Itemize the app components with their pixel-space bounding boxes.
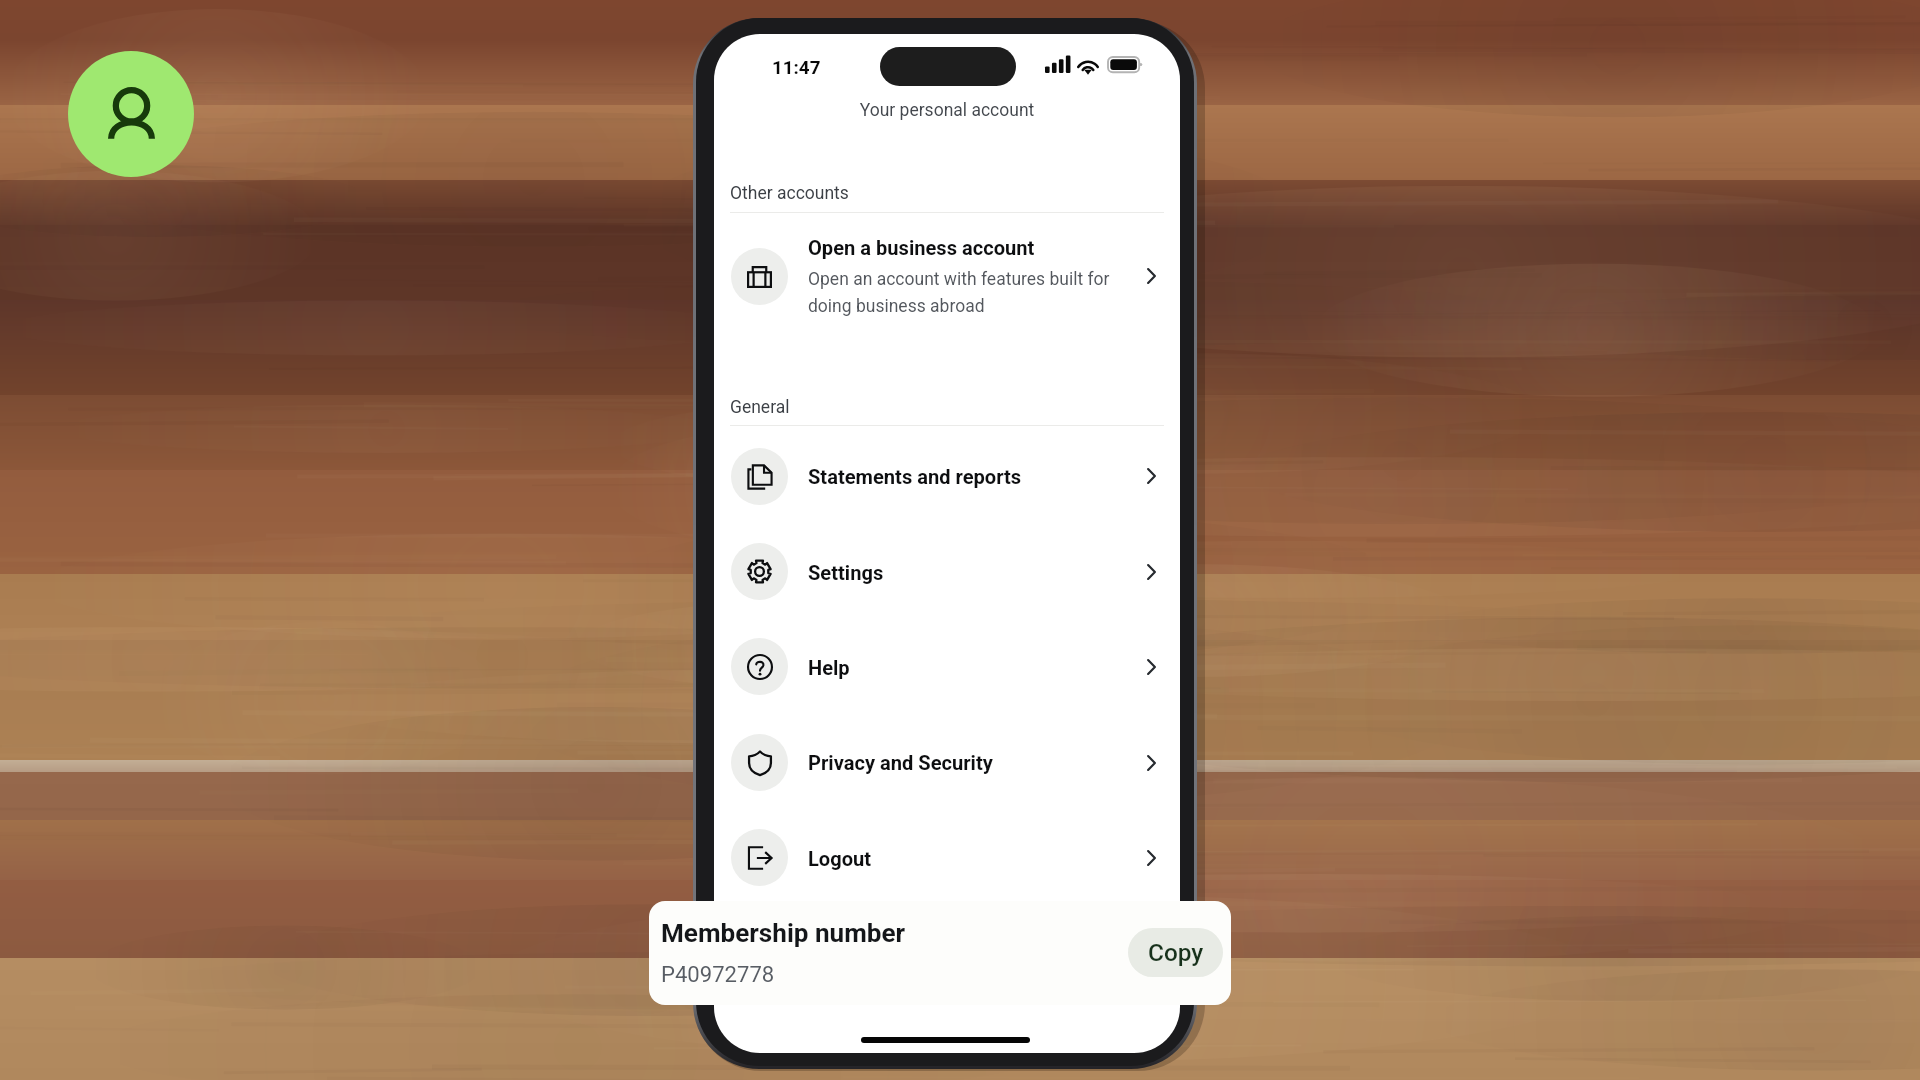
staticText: Help <box>808 656 850 680</box>
staticText: 11:47 <box>772 57 821 79</box>
other: Open <box>1147 468 1156 484</box>
button[interactable] <box>724 243 1170 309</box>
other: Open <box>1147 755 1156 771</box>
button[interactable]: Membership number <box>649 901 1231 1005</box>
other: Open <box>1147 268 1156 284</box>
staticText: Other accounts <box>730 183 849 204</box>
staticText: Membership number <box>661 918 906 949</box>
button[interactable] <box>724 825 1170 891</box>
button[interactable] <box>724 539 1170 605</box>
other: Open <box>1147 564 1156 580</box>
staticText: Logout <box>808 847 872 871</box>
other: Open <box>1147 850 1156 866</box>
button[interactable] <box>724 443 1170 509</box>
staticText: P40972778 <box>661 961 775 987</box>
staticText: Statements and reports <box>808 465 1022 489</box>
button[interactable] <box>724 634 1170 700</box>
other: Open <box>1147 659 1156 675</box>
staticText: Your personal account <box>714 100 1180 121</box>
staticText: Privacy and Security <box>808 751 993 775</box>
staticText: General <box>730 397 790 418</box>
button[interactable]: Profile <box>68 51 194 177</box>
button[interactable]: Copy <box>1128 928 1223 977</box>
staticText: Open an account with features built for … <box>808 269 1128 316</box>
staticText: Open a business account <box>808 236 1035 260</box>
staticText: Copy <box>1148 938 1204 967</box>
button[interactable] <box>724 729 1170 795</box>
staticText: Settings <box>808 561 884 585</box>
